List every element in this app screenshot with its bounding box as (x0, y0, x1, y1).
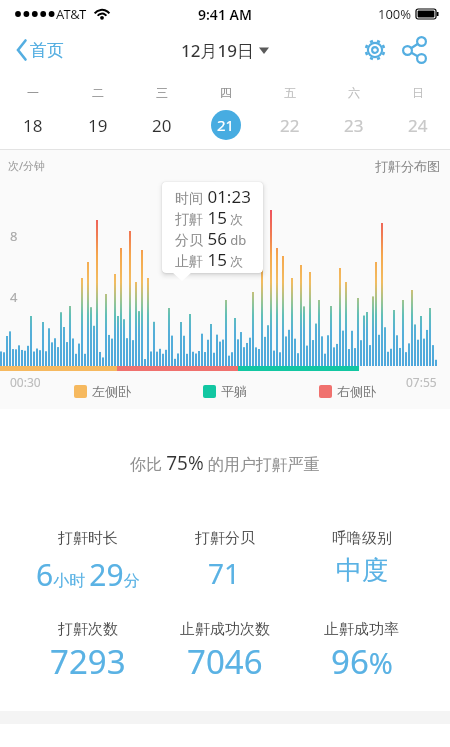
staticText: 中度 (336, 554, 388, 587)
staticText: 7293 (50, 639, 126, 684)
staticText: AT&T (56, 5, 87, 23)
staticText: 18 (23, 114, 43, 137)
staticText: 23 (344, 114, 364, 137)
button[interactable]: 呼噜级别 (293, 529, 430, 587)
staticText: 6小时 29分 (36, 554, 140, 595)
button[interactable]: 19 (88, 114, 108, 137)
button[interactable]: 止鼾成功率 (293, 620, 430, 684)
staticText: 打鼾时长 (58, 529, 118, 548)
button[interactable]: 打鼾分贝 (156, 529, 293, 592)
staticText: 4 (10, 288, 18, 306)
staticText: 右侧卧 (337, 383, 376, 399)
staticText: 9:41 AM (198, 5, 252, 24)
staticText: 22 (280, 114, 300, 137)
staticText: 96% (331, 639, 393, 684)
staticText: 打鼾 15 次 (175, 206, 244, 227)
staticText: 次/分钟 (8, 158, 46, 173)
button[interactable]: 24 (408, 114, 428, 137)
staticText: 8 (10, 227, 18, 245)
staticText: 分贝 56 db (175, 227, 247, 248)
staticText: 止鼾 15 次 (175, 248, 244, 269)
staticText: 打鼾次数 (58, 620, 118, 639)
staticText: 19 (88, 114, 108, 137)
staticText: 四 (220, 85, 232, 100)
staticText: 你比 75% 的用户打鼾严重 (130, 450, 320, 476)
staticText: 止鼾成功率 (324, 620, 399, 639)
button[interactable]: 21 (211, 110, 241, 140)
button[interactable]: 首页 (16, 39, 64, 61)
staticText: 打鼾分贝 (195, 529, 255, 548)
staticText: 71 (208, 554, 241, 592)
staticText: 二 (92, 85, 104, 100)
staticText: 打鼾分布图 (375, 158, 440, 174)
staticText: 一 (27, 85, 39, 100)
staticText: 五 (284, 85, 296, 100)
button[interactable] (362, 37, 388, 63)
staticText: 日 (412, 85, 424, 100)
button[interactable]: 22 (280, 114, 300, 137)
staticText: 12月19日 (181, 39, 254, 62)
staticText: 24 (408, 114, 428, 137)
button[interactable]: 12月19日 (181, 39, 269, 62)
button[interactable] (402, 37, 428, 63)
staticText: 止鼾成功次数 (180, 620, 270, 639)
staticText: 100% (378, 5, 412, 23)
button[interactable]: 打鼾次数 (20, 620, 156, 684)
staticText: 20 (152, 114, 172, 137)
staticText: 21 (217, 115, 235, 135)
staticText: 呼噜级别 (332, 529, 392, 548)
button[interactable]: 止鼾成功次数 (156, 620, 293, 684)
staticText: 7046 (187, 639, 263, 684)
staticText: 三 (156, 85, 168, 100)
button[interactable]: 18 (23, 114, 43, 137)
staticText: 左侧卧 (92, 383, 131, 399)
button[interactable]: 打鼾时长 (20, 529, 156, 595)
staticText: 时间 01:23 (175, 185, 251, 206)
button[interactable]: 23 (344, 114, 364, 137)
staticText: 平躺 (221, 383, 247, 399)
staticText: 07:55 (406, 374, 437, 390)
staticText: 00:30 (10, 374, 41, 390)
button[interactable]: 20 (152, 114, 172, 137)
staticText: 首页 (30, 40, 64, 61)
staticText: 六 (348, 85, 360, 100)
